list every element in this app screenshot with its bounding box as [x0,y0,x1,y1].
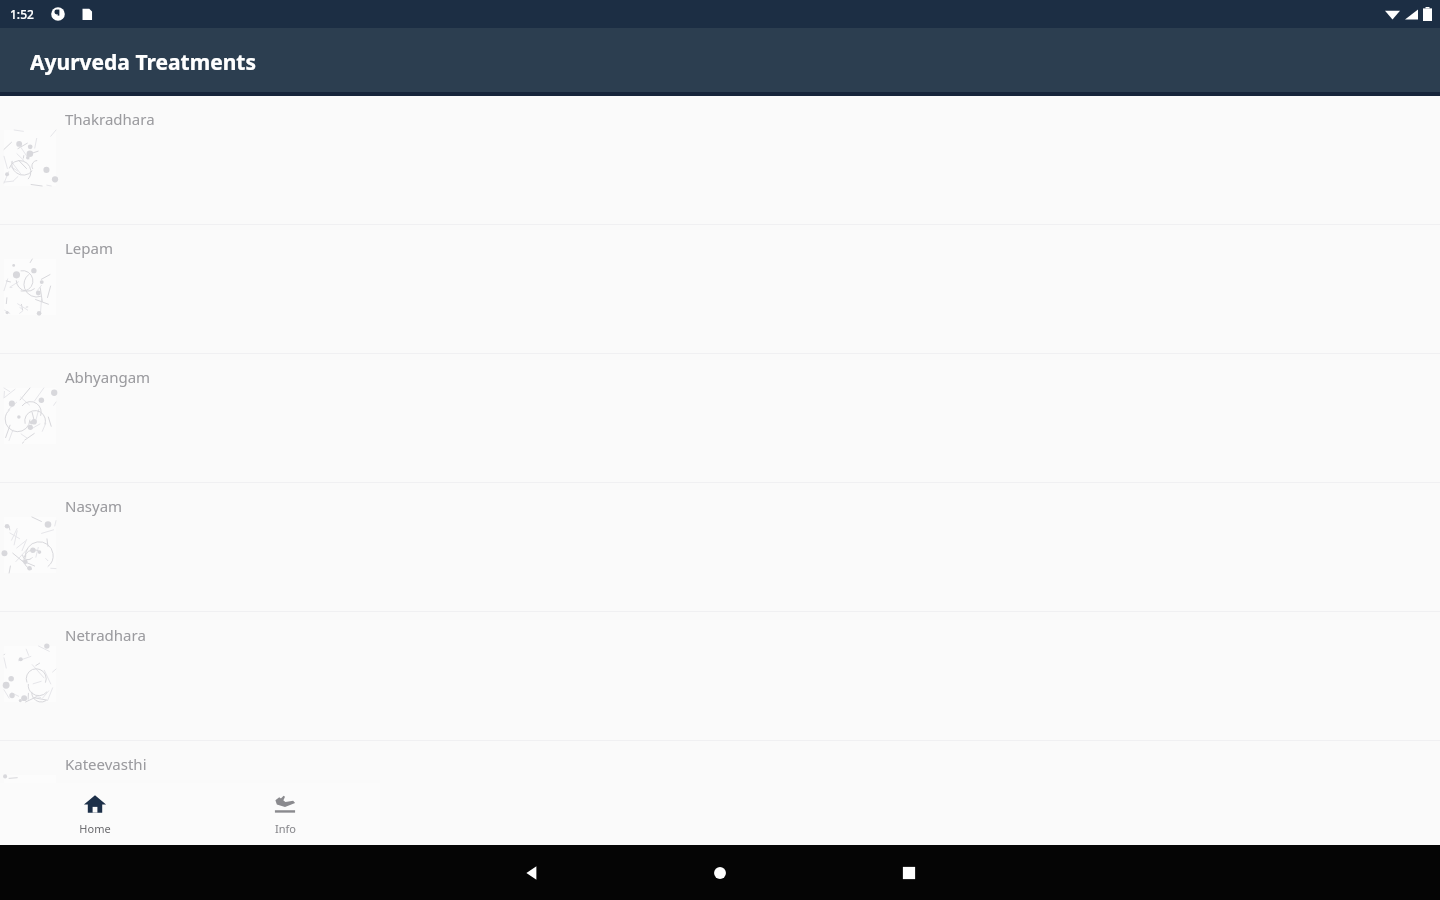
staticText: Nasyam [65,496,123,516]
button[interactable]: Netradhara [0,612,1440,740]
button[interactable]: Home [0,783,190,845]
staticText: Lepam [65,238,113,258]
other: Back [522,863,542,883]
staticText: Info [275,821,296,836]
staticText: 1:52 [10,6,34,22]
other: Home [711,864,729,882]
staticText: Thakradhara [65,109,155,129]
button[interactable]: Thakradhara [0,96,1440,224]
button[interactable]: Kateevasthi [0,741,1440,869]
button[interactable]: Info [190,783,380,845]
button[interactable]: Abhyangam [0,354,1440,482]
staticText: Abhyangam [65,367,151,387]
staticText: Ayurveda Treatments [30,48,256,77]
staticText: Kateevasthi [65,754,147,774]
other: Recent apps [900,864,918,882]
staticText: Home [79,821,111,836]
staticText: Netradhara [65,625,146,645]
